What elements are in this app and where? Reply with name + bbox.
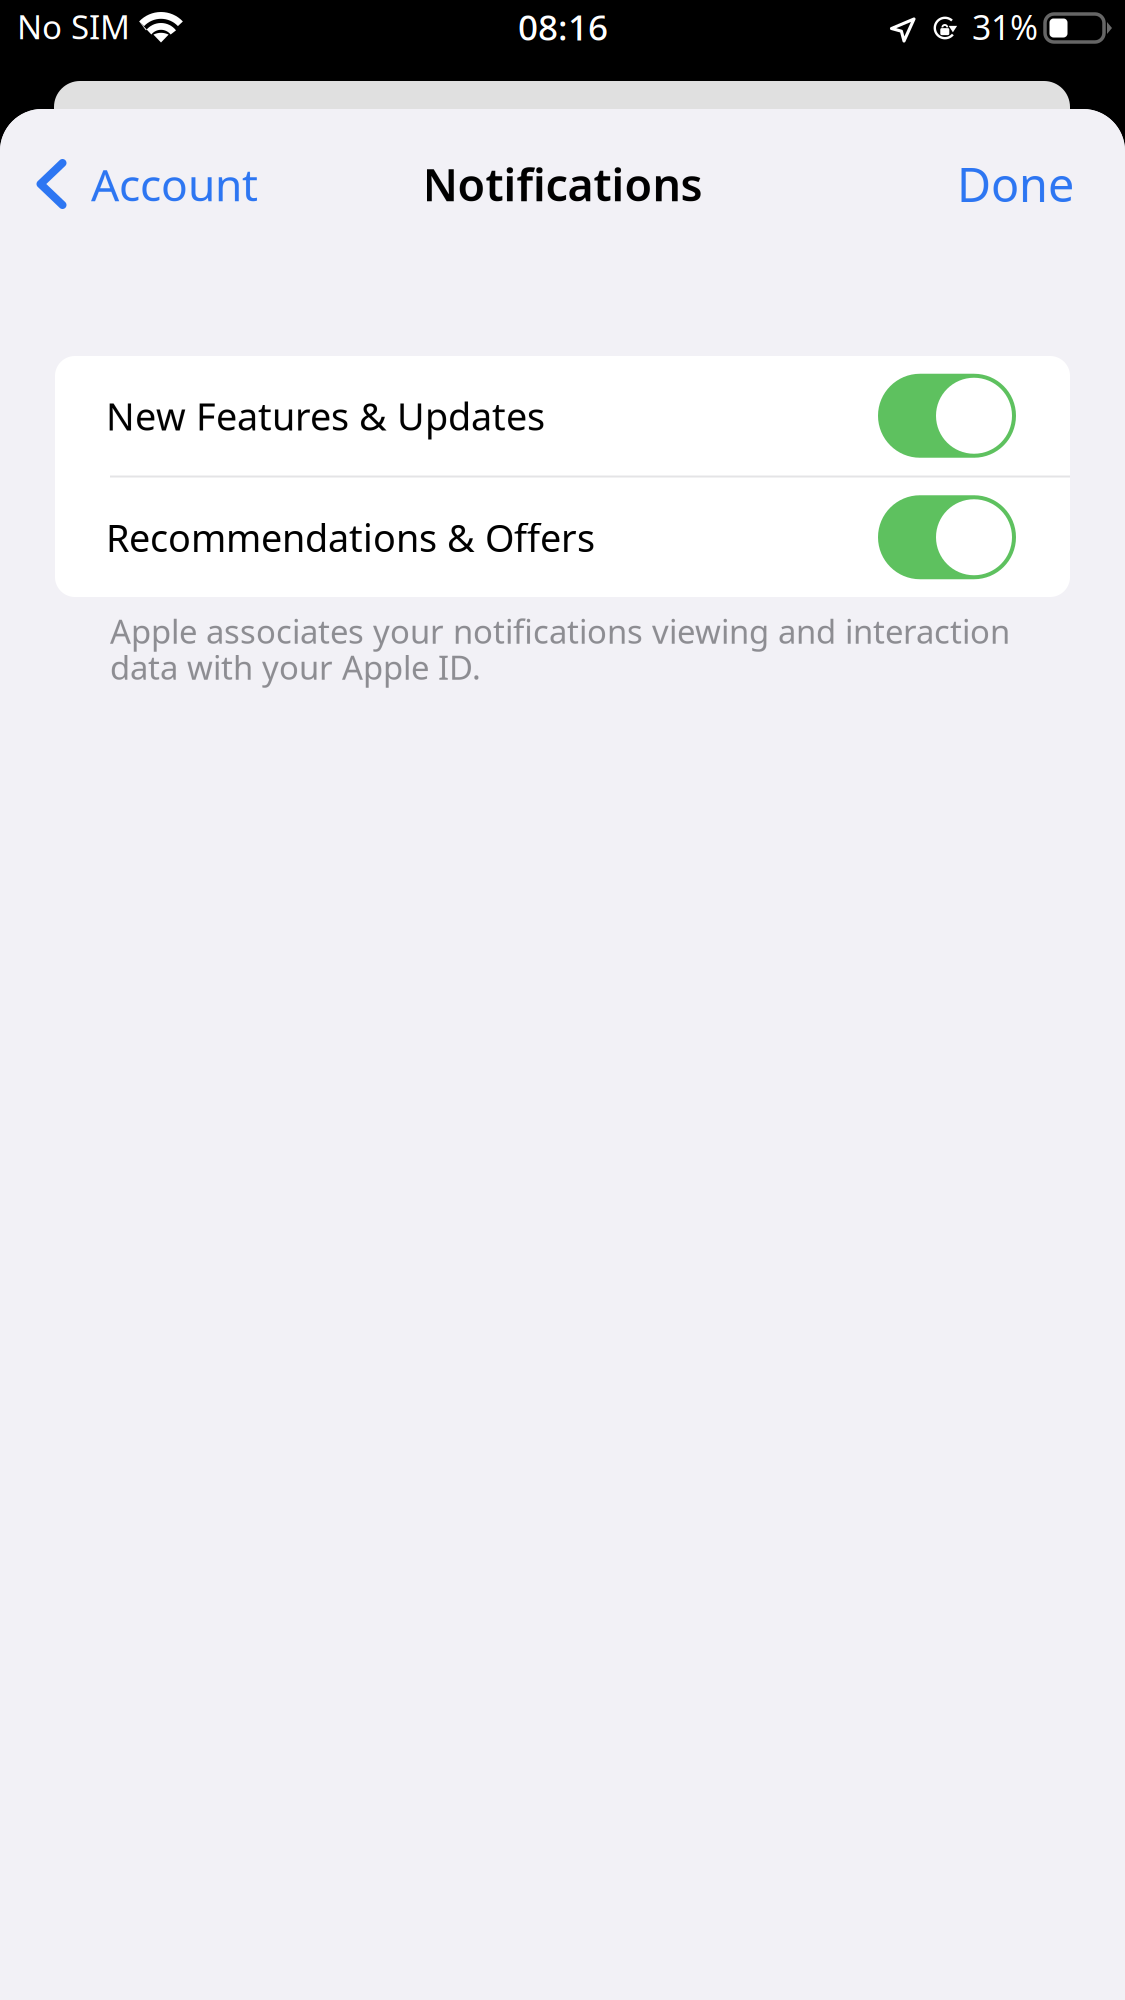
staticText: Recommendations & Offers xyxy=(106,512,595,563)
button[interactable]: Recommendations & Offers xyxy=(55,477,1070,597)
staticText: No SIM xyxy=(17,4,130,49)
button[interactable]: Account xyxy=(0,136,280,232)
staticText: Apple associates your notifications view… xyxy=(110,613,1010,685)
staticText: New Features & Updates xyxy=(106,390,545,441)
staticText: Notifications xyxy=(422,154,702,214)
button[interactable]: Done xyxy=(917,136,1125,232)
button[interactable]: New Features & Updates xyxy=(55,356,1070,475)
staticText: Account xyxy=(91,154,258,214)
staticText: Done xyxy=(957,152,1074,216)
staticText: 31% xyxy=(972,4,1038,50)
staticText: 08:16 xyxy=(518,3,608,51)
